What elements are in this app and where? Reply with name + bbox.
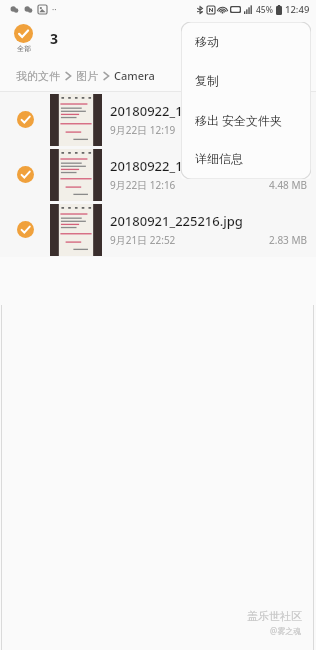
- staticText: 3.91 MB: [269, 123, 308, 137]
- staticText: 移出 安全文件夹: [195, 112, 283, 128]
- staticText: 12:49: [285, 3, 310, 16]
- button[interactable]: Camera: [114, 68, 155, 83]
- button[interactable]: 20180921_225216.jpg: [0, 202, 316, 257]
- staticText: @雾之魂: [270, 625, 302, 636]
- staticText: 复制: [195, 73, 219, 88]
- button[interactable]: 20180922_121628.jpg: [0, 147, 316, 202]
- button[interactable]: 我的文件: [16, 69, 60, 83]
- staticText: 9月21日 22:52: [110, 233, 176, 247]
- staticText: 9月22日 12:16: [110, 178, 176, 192]
- button[interactable]: 详细信息: [181, 139, 311, 178]
- button[interactable]: 复制: [181, 61, 311, 100]
- staticText: 移动: [195, 34, 219, 49]
- staticText: ··: [52, 4, 57, 15]
- staticText: 9月22日 12:19: [110, 123, 176, 137]
- staticText: 2.83 MB: [269, 233, 308, 247]
- staticText: 盖乐世社区: [247, 609, 302, 623]
- staticText: 45%: [256, 4, 273, 16]
- staticText: 全部: [17, 44, 31, 53]
- button[interactable]: Select all: [12, 24, 35, 53]
- staticText: 详细信息: [195, 151, 243, 166]
- staticText: 20180922_121953.jpg: [110, 102, 243, 120]
- staticText: 20180921_225216.jpg: [110, 212, 243, 230]
- button[interactable]: 图片: [76, 69, 98, 83]
- staticText: 4.48 MB: [269, 178, 308, 192]
- button[interactable]: 移出 安全文件夹: [181, 100, 311, 139]
- button[interactable]: 20180922_121953.jpg: [0, 92, 316, 147]
- staticText: 3: [50, 29, 59, 48]
- button[interactable]: 移动: [181, 22, 311, 61]
- staticText: 20180922_121628.jpg: [110, 157, 243, 175]
